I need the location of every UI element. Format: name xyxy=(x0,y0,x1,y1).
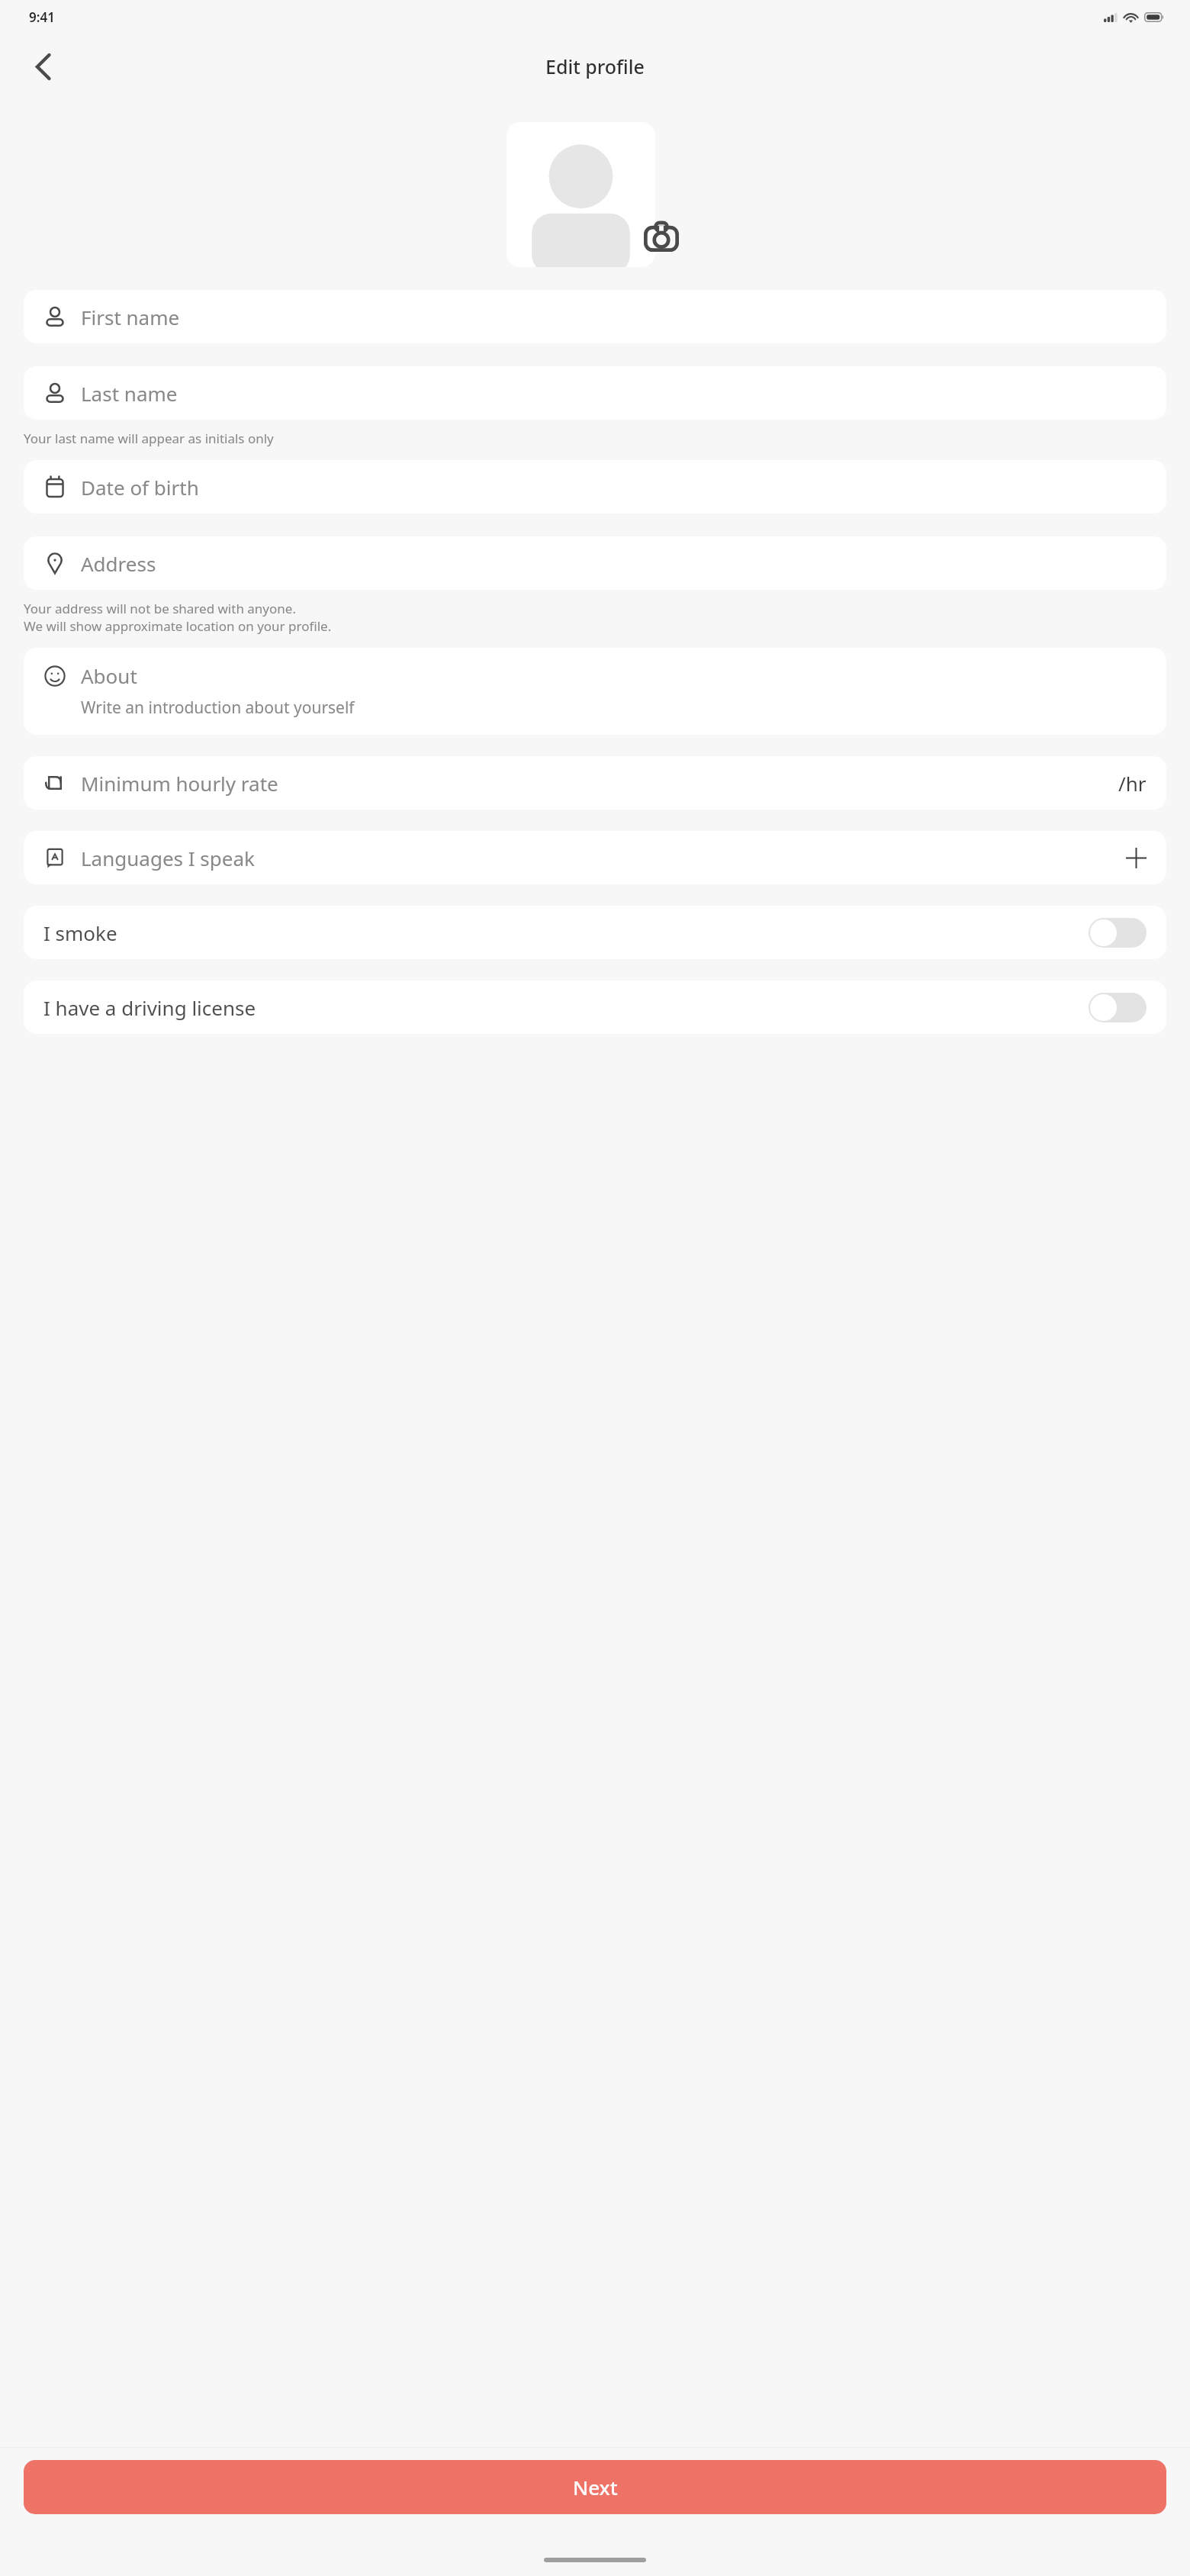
button[interactable]: First name xyxy=(24,290,1166,343)
button[interactable]: Profile photo xyxy=(507,122,655,267)
staticText: We will show approximate location on you… xyxy=(24,617,332,635)
staticText: Your last name will appear as initials o… xyxy=(24,430,274,447)
button[interactable]: Change photo xyxy=(639,214,683,258)
staticText: First name xyxy=(81,304,180,330)
button[interactable]: Address xyxy=(24,536,1166,590)
staticText: Next xyxy=(573,2474,618,2500)
staticText: /hr xyxy=(1118,770,1147,797)
staticText: I have a driving license xyxy=(43,994,256,1021)
staticText: Address xyxy=(81,550,156,577)
staticText: Date of birth xyxy=(81,474,199,501)
staticText: Your address will not be shared with any… xyxy=(24,600,296,617)
staticText: 9:41 xyxy=(29,8,55,26)
button[interactable]: Minimum hourly rate xyxy=(24,756,1166,810)
button[interactable]: Next xyxy=(24,2460,1166,2514)
staticText: About xyxy=(81,662,137,689)
button[interactable]: Back xyxy=(15,39,70,94)
button[interactable]: Last name xyxy=(24,366,1166,420)
button[interactable]: About xyxy=(24,648,1166,735)
button[interactable]: I smoke xyxy=(24,906,1166,959)
button[interactable]: I smoke xyxy=(1089,918,1147,948)
staticText: Minimum hourly rate xyxy=(81,770,278,797)
staticText: Last name xyxy=(81,380,178,407)
staticText: I smoke xyxy=(43,919,117,946)
button[interactable]: Languages I speak xyxy=(24,831,1166,884)
button[interactable]: Date of birth xyxy=(24,460,1166,514)
button[interactable]: I have a driving license xyxy=(1089,993,1147,1022)
staticText: Edit profile xyxy=(545,53,645,79)
button[interactable]: I have a driving license xyxy=(24,980,1166,1034)
staticText: Languages I speak xyxy=(81,845,255,871)
staticText: Write an introduction about yourself xyxy=(81,697,355,719)
